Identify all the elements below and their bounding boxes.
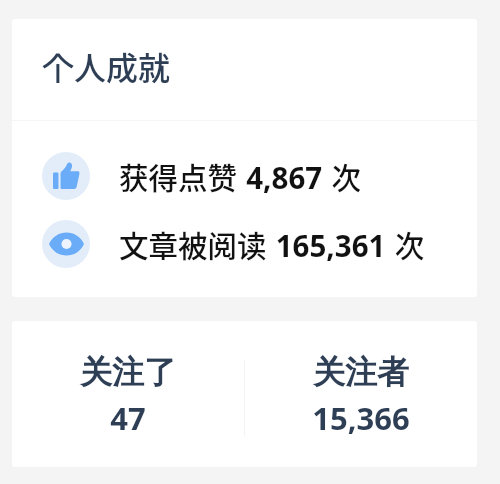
button[interactable]: 关注者	[244, 321, 477, 467]
staticText: 关注者	[313, 352, 409, 392]
staticText: 获得点赞 4,867 次	[119, 155, 361, 198]
button[interactable]: Likes	[12, 150, 477, 202]
staticText: 15,366	[312, 397, 410, 439]
staticText: 个人成就	[42, 43, 171, 89]
other: Reads	[42, 220, 90, 268]
staticText: 47	[110, 397, 146, 439]
button[interactable]: 个人成就	[42, 42, 171, 90]
staticText: 关注了	[80, 352, 176, 392]
button[interactable]: 关注了	[12, 321, 244, 467]
button[interactable]: Reads	[12, 218, 477, 270]
other: Likes	[42, 152, 90, 200]
staticText: 文章被阅读 165,361 次	[119, 223, 425, 266]
